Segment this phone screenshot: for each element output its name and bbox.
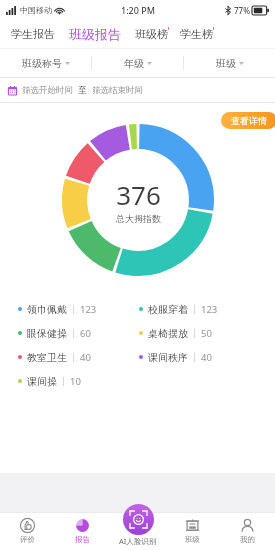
staticText: 1:20 PM: [121, 4, 155, 16]
staticText: 中国移动: [20, 5, 52, 15]
staticText: AI人脸识别: [119, 536, 157, 546]
staticText: 报告: [75, 535, 90, 544]
button[interactable]: 筛选开始时间: [0, 78, 275, 102]
staticText: 123: [80, 303, 97, 316]
staticText: 40: [201, 351, 212, 364]
staticText: 40: [80, 351, 91, 364]
button[interactable]: 学生榜: [179, 25, 214, 43]
staticText: 筛选结束时间: [92, 85, 143, 96]
button[interactable]: 学生报告: [10, 25, 56, 43]
button[interactable]: AI人脸识别: [119, 504, 157, 546]
staticText: 总大拇指数: [116, 213, 161, 224]
staticText: 至: [78, 85, 87, 96]
staticText: 班级榜: [135, 27, 168, 41]
staticText: 班级: [216, 57, 236, 70]
staticText: 校服穿着: [148, 303, 188, 316]
button[interactable]: 班级: [184, 49, 275, 77]
staticText: 班级报告: [69, 26, 121, 42]
staticText: 筛选开始时间: [22, 85, 73, 96]
staticText: 年级: [124, 57, 144, 70]
button[interactable]: 我的: [220, 512, 275, 550]
button[interactable]: 查看详情: [221, 112, 275, 129]
staticText: 123: [201, 303, 218, 316]
button[interactable]: 班级称号: [0, 49, 91, 77]
staticText: 班级: [185, 535, 200, 544]
staticText: 查看详情: [231, 115, 267, 126]
staticText: 10: [70, 375, 81, 388]
button[interactable]: 校服穿着: [139, 297, 261, 321]
staticText: 60: [80, 327, 91, 340]
staticText: 学生报告: [11, 27, 55, 41]
button[interactable]: 教室卫生: [18, 345, 139, 369]
button[interactable]: 课间操: [18, 369, 139, 393]
staticText: 评价: [20, 535, 35, 544]
button[interactable]: 班级榜: [134, 25, 169, 43]
staticText: 课间操: [27, 375, 57, 388]
button[interactable]: 班级: [165, 512, 220, 550]
staticText: 班级称号: [22, 57, 62, 70]
staticText: 我的: [240, 535, 255, 544]
button[interactable]: 年级: [92, 49, 183, 77]
button[interactable]: 班级报告: [68, 24, 122, 44]
staticText: 桌椅摆放: [148, 327, 188, 340]
staticText: 学生榜: [180, 27, 213, 41]
staticText: 领巾佩戴: [27, 303, 67, 316]
staticText: 77%: [234, 5, 250, 16]
staticText: 课间秩序: [148, 351, 188, 364]
button[interactable]: 桌椅摆放: [139, 321, 261, 345]
button[interactable]: 领巾佩戴: [18, 297, 139, 321]
staticText: 376: [116, 177, 161, 212]
button[interactable]: 眼保健操: [18, 321, 139, 345]
staticText: 教室卫生: [27, 351, 67, 364]
staticText: 眼保健操: [27, 327, 67, 340]
button[interactable]: 评价: [0, 512, 55, 550]
staticText: 50: [201, 327, 212, 340]
button[interactable]: 课间秩序: [139, 345, 261, 369]
button[interactable]: 报告: [55, 512, 110, 550]
